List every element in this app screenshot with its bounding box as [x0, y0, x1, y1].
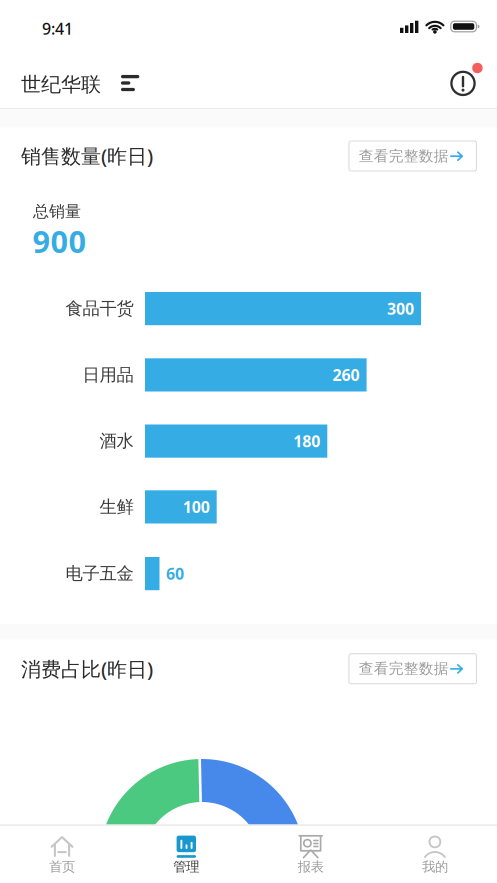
staticText: 查看完整数据: [359, 147, 449, 165]
staticText: 60: [166, 563, 184, 584]
button[interactable]: 通知: [446, 63, 480, 103]
staticText: 日用品: [83, 364, 134, 386]
staticText: 管理: [173, 859, 199, 875]
staticText: 9:41: [42, 18, 73, 39]
staticText: 生鲜: [100, 496, 134, 518]
staticText: 查看完整数据: [359, 660, 449, 678]
staticText: 消费占比(昨日): [21, 655, 153, 682]
button[interactable]: 管理: [146, 824, 226, 880]
staticText: 报表: [298, 859, 324, 875]
staticText: 酒水: [100, 430, 134, 452]
staticText: 食品干货: [66, 298, 134, 319]
staticText: 100: [183, 496, 210, 517]
staticText: 我的: [422, 859, 448, 875]
button[interactable]: 报表: [271, 824, 351, 880]
button[interactable]: 查看完整数据: [349, 141, 476, 171]
button[interactable]: 切换门店: [117, 71, 143, 95]
staticText: 电子五金: [66, 563, 134, 584]
staticText: 销售数量(昨日): [21, 142, 153, 169]
staticText: 总销量: [33, 202, 81, 221]
staticText: 300: [387, 298, 414, 319]
staticText: 260: [333, 364, 360, 385]
staticText: 180: [293, 430, 320, 452]
staticText: 首页: [49, 859, 75, 875]
button[interactable]: 我的: [395, 824, 475, 880]
staticText: 900: [32, 221, 86, 261]
staticText: 世纪华联: [21, 72, 101, 97]
button[interactable]: 首页: [22, 824, 102, 880]
button[interactable]: 查看完整数据: [349, 654, 476, 684]
